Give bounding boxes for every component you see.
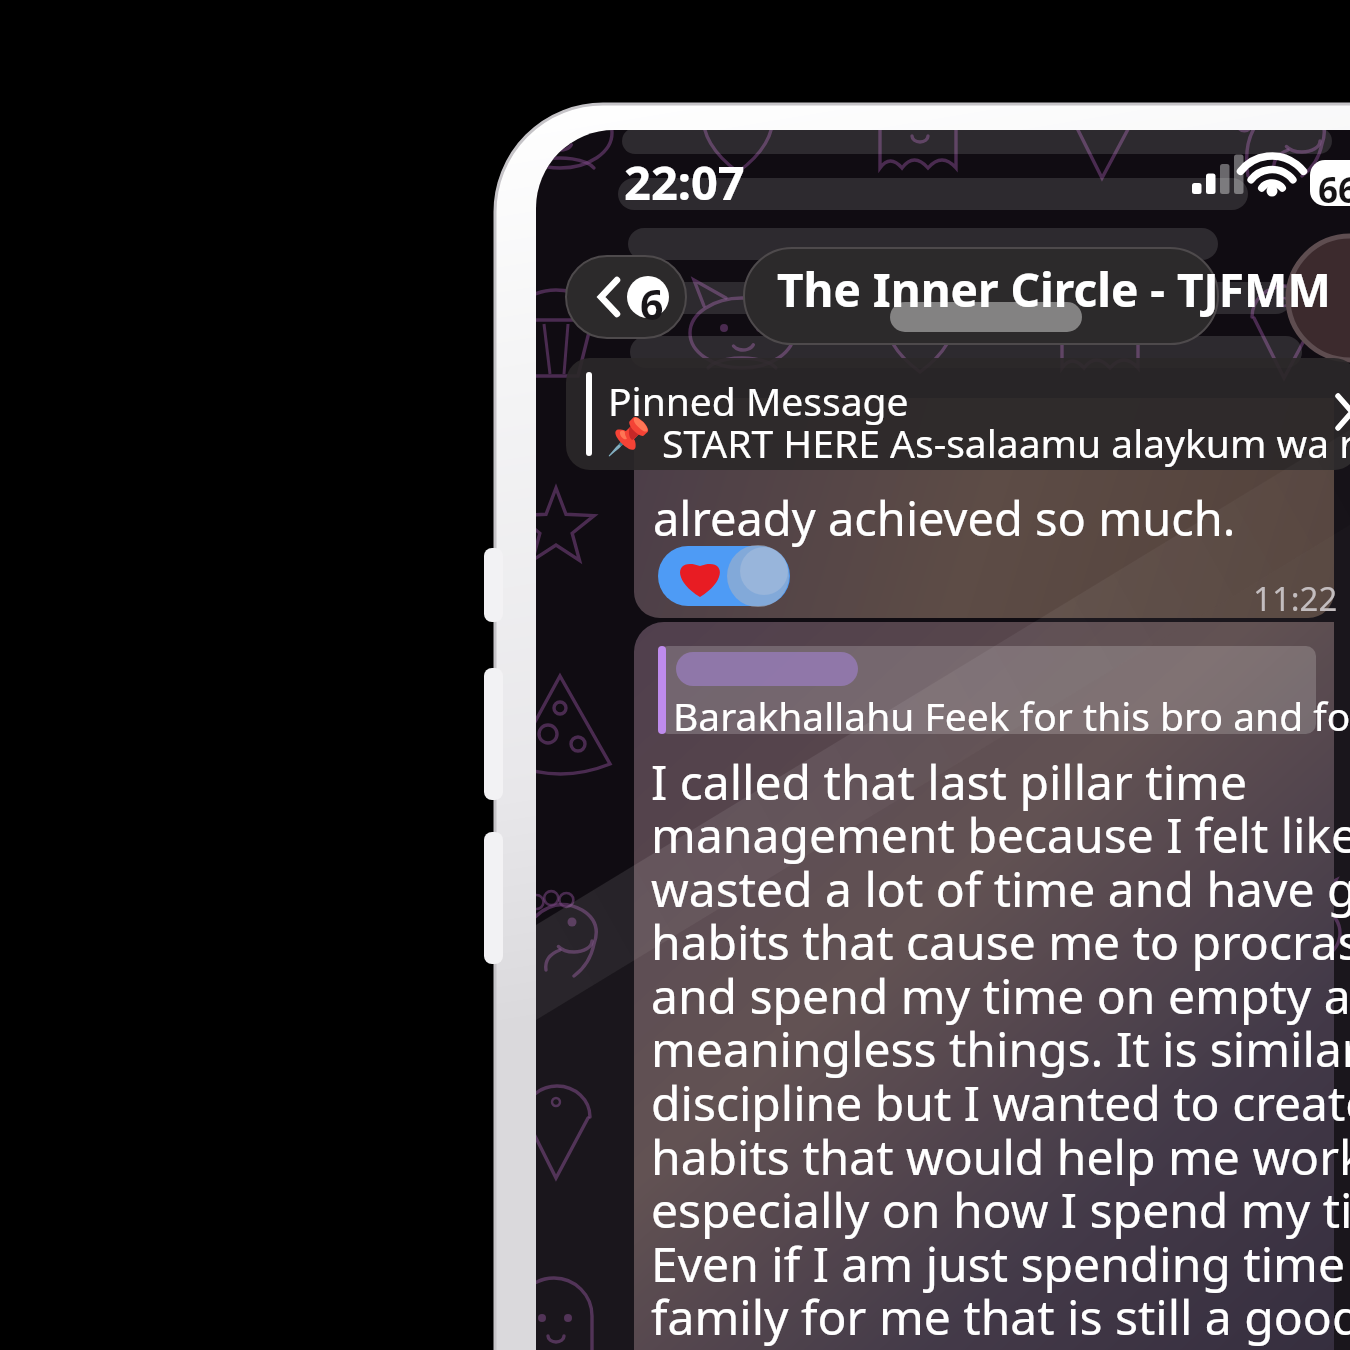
button[interactable]: Back, 6 unread chats [566, 256, 686, 338]
staticText: Barakhallahu Feek for this bro and for h… [673, 689, 1350, 742]
staticText: 66 [1318, 166, 1350, 214]
staticText: already achieved so much. [653, 486, 1236, 550]
button[interactable] [634, 448, 1350, 618]
staticText: 22:07 [624, 150, 745, 214]
staticText: I called that last pillar time [651, 749, 1247, 814]
staticText: meaningless things. It is similar to [651, 1016, 1350, 1081]
staticText: 6 [640, 276, 664, 332]
button[interactable]: Reply quote [658, 646, 1316, 734]
button[interactable]: Pinned message [566, 358, 1350, 470]
staticText: habits that would help me work [651, 1124, 1350, 1189]
staticText: Pinned Message [608, 374, 909, 427]
staticText: and spend my time on empty and [651, 963, 1350, 1028]
button[interactable]: Channel avatar [1290, 238, 1350, 358]
staticText: 11:22 [1253, 576, 1338, 621]
staticText: START HERE As-salaamu alaykum wa rahmat… [662, 416, 1350, 469]
staticText: discipline but I wanted to create [651, 1070, 1350, 1135]
staticText: family for me that is still a good use o… [651, 1284, 1350, 1349]
staticText: time and anytime that I will spend [651, 1338, 1350, 1350]
staticText: especially on how I spend my time. [651, 1177, 1350, 1242]
button[interactable]: Heart reaction [658, 546, 790, 606]
button[interactable] [634, 622, 1350, 1350]
staticText: Even if I am just spending time with [651, 1231, 1350, 1296]
staticText: wasted a lot of time and have gained [651, 856, 1350, 921]
button[interactable]: The Inner Circle - TJFMM [744, 248, 1218, 344]
staticText: management because I felt like I have [651, 802, 1350, 867]
staticText: habits that cause me to procrastinate [651, 909, 1350, 974]
staticText: The Inner Circle - TJFMM [777, 258, 1331, 321]
staticText: 📌 [606, 416, 651, 458]
